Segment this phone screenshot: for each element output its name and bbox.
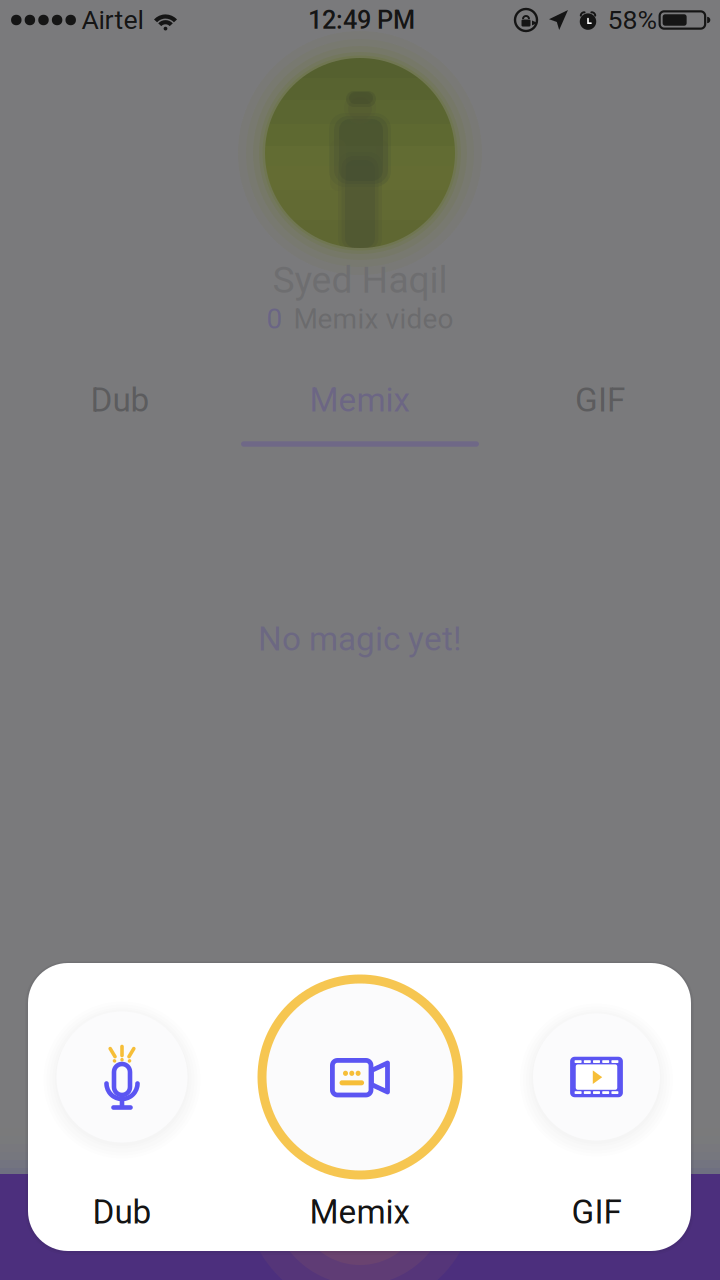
staticText: 58% bbox=[607, 4, 657, 36]
staticText: Dub bbox=[90, 380, 149, 420]
staticText: 0 bbox=[266, 303, 282, 335]
staticText: Memix bbox=[309, 380, 410, 420]
staticText: No magic yet! bbox=[258, 619, 462, 659]
button[interactable]: GIF bbox=[496, 982, 696, 1238]
staticText: 12:49 PM bbox=[308, 5, 415, 35]
staticText: GIF bbox=[571, 1192, 621, 1232]
staticText: Dub bbox=[92, 1192, 151, 1232]
button[interactable]: Dub bbox=[22, 982, 222, 1238]
staticText: Airtel bbox=[81, 4, 143, 36]
staticText: Syed Haqil bbox=[272, 258, 447, 302]
staticText: GIF bbox=[575, 380, 625, 420]
button[interactable]: GIF bbox=[480, 372, 720, 448]
button[interactable]: Dub bbox=[0, 372, 240, 448]
staticText: Memix video bbox=[293, 303, 453, 335]
button[interactable]: Memix bbox=[250, 982, 470, 1238]
button[interactable]: Memix bbox=[240, 372, 480, 448]
staticText: Memix bbox=[309, 1192, 410, 1232]
